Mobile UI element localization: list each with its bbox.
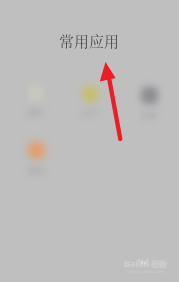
staticText: 经验: [151, 259, 167, 269]
button[interactable]: 设置: [127, 87, 171, 120]
staticText: 常用应用: [59, 30, 120, 52]
button[interactable]: 常用应用: [0, 0, 179, 81]
button[interactable]: 相机: [14, 142, 58, 175]
other: Annotation arrow pointing to title: [0, 0, 179, 282]
button[interactable]: 天气: [68, 86, 112, 118]
button[interactable]: 微信: [14, 85, 58, 117]
staticText: Baidu: [124, 257, 150, 269]
